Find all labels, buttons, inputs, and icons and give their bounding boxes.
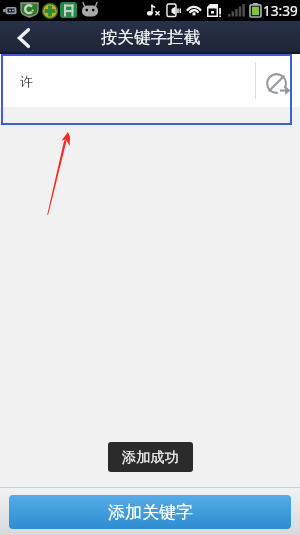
staticText: 按关键字拦截: [101, 27, 200, 48]
button[interactable]: 添加关键字: [9, 495, 291, 529]
staticText: 添加成功: [122, 448, 179, 466]
button[interactable]: Back: [0, 21, 48, 54]
staticText: 13:39: [263, 1, 298, 20]
staticText: 许: [20, 73, 33, 89]
button[interactable]: Clear keyword: [256, 54, 300, 107]
staticText: 添加关键字: [108, 502, 193, 523]
